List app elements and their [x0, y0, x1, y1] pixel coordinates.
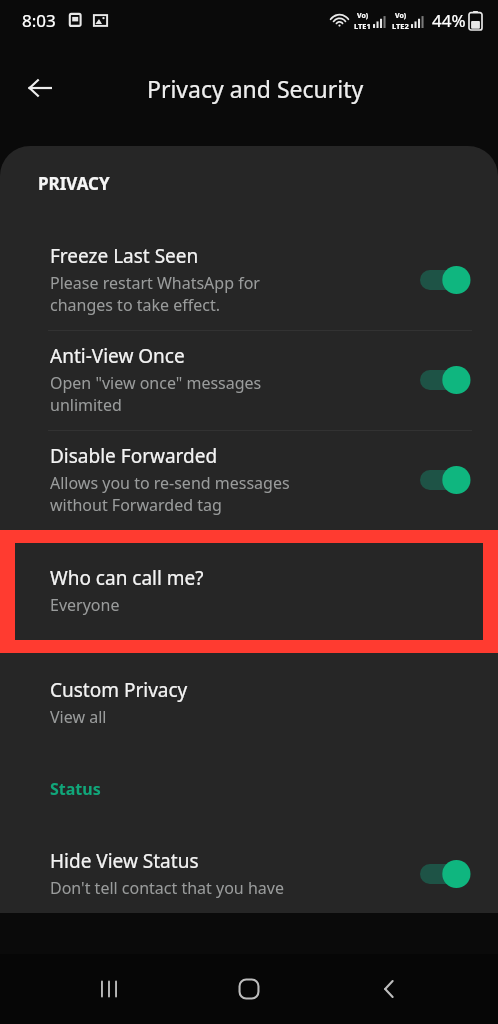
staticText: Who can call me?	[50, 565, 204, 591]
staticText: Anti-View Once	[50, 343, 185, 369]
staticText: Please restart WhatsApp for changes to t…	[50, 272, 260, 316]
staticText: PRIVACY	[38, 172, 110, 195]
button[interactable]: Toggle on	[420, 365, 472, 395]
button[interactable]: Home	[217, 957, 281, 1021]
staticText: Privacy and Security	[147, 73, 364, 104]
staticText: Freeze Last Seen	[50, 243, 199, 269]
button[interactable]: Hide View Status	[0, 836, 498, 913]
staticText: Open "view once" messages unlimited	[50, 372, 262, 416]
button[interactable]: Recents	[77, 957, 141, 1021]
button[interactable]: Back	[358, 957, 422, 1021]
button[interactable]: Freeze Last Seen	[0, 231, 498, 330]
staticText: Hide View Status	[50, 848, 199, 874]
staticText: LTE1	[354, 21, 371, 31]
staticText: Disable Forwarded	[50, 443, 218, 469]
staticText: 8:03	[22, 9, 56, 32]
staticText: Custom Privacy	[50, 677, 188, 703]
staticText: Vo)	[357, 11, 369, 21]
button[interactable]: Anti-View Once	[0, 331, 498, 430]
staticText: Vo)	[395, 11, 407, 21]
button[interactable]: Toggle on	[420, 265, 472, 295]
button[interactable]: Toggle on	[420, 465, 472, 495]
staticText: LTE2	[392, 21, 409, 31]
staticText: Allows you to re-send messages without F…	[50, 472, 290, 516]
button[interactable]: Custom Privacy	[0, 671, 498, 738]
button[interactable]: Disable Forwarded	[0, 431, 498, 530]
button[interactable]: Who can call me?	[15, 543, 483, 640]
staticText: Status	[50, 778, 101, 800]
button[interactable]: Back	[12, 60, 68, 116]
button[interactable]: Toggle on	[420, 859, 472, 889]
staticText: Don't tell contact that you have	[50, 877, 284, 899]
staticText: Everyone	[50, 594, 120, 616]
staticText: 44%	[432, 9, 466, 32]
staticText: View all	[50, 706, 107, 728]
